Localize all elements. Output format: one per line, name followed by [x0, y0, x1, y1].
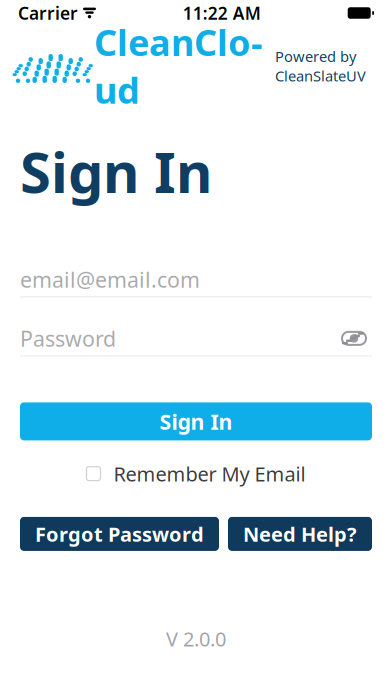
button[interactable]: Need Help? [228, 517, 372, 551]
button[interactable]: Remember My Email [82, 454, 309, 493]
staticText: Forgot Password [35, 521, 204, 547]
staticText: Sign In [20, 134, 212, 208]
button[interactable]: Show password [336, 322, 372, 354]
staticText: Remember My Email [113, 460, 305, 487]
staticText: Need Help? [243, 521, 357, 547]
staticText: Sign In [159, 407, 232, 435]
staticText: Powered by CleanSlateUV [275, 46, 366, 85]
staticText: Password [20, 324, 116, 352]
staticText: 11:22 AM [183, 1, 261, 24]
staticText: Carrier [18, 1, 78, 24]
staticText: email@email.com [20, 265, 200, 293]
button[interactable]: Sign In [20, 402, 372, 440]
staticText: V 2.0.0 [166, 625, 226, 652]
staticText: CleanCloud [94, 18, 263, 114]
button[interactable]: Forgot Password [20, 517, 219, 551]
